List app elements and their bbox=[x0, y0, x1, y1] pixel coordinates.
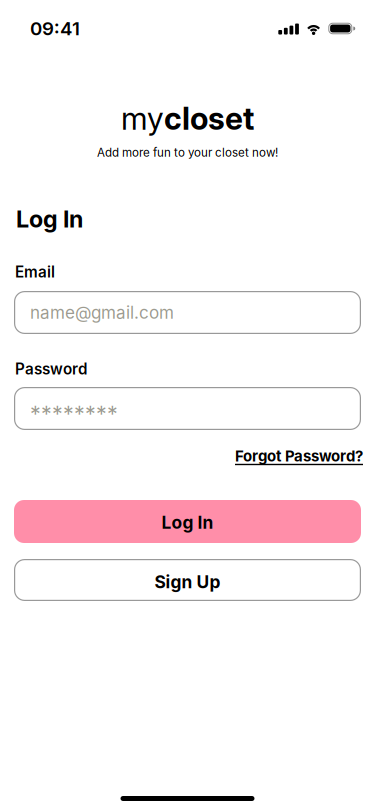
staticText: name@gmail.com bbox=[30, 302, 174, 323]
staticText: 09:41 bbox=[30, 17, 80, 40]
button[interactable]: Log In bbox=[14, 500, 361, 543]
staticText: Add more fun to your closet now! bbox=[97, 145, 278, 159]
button[interactable]: Forgot Password? bbox=[235, 447, 363, 465]
secureTextField[interactable]: ******** bbox=[30, 401, 361, 427]
staticText: Forgot Password? bbox=[235, 447, 363, 465]
staticText: Sign Up bbox=[154, 571, 220, 592]
staticText: ******** bbox=[30, 401, 118, 427]
staticText: mycloset bbox=[121, 100, 254, 137]
staticText: Log In bbox=[161, 512, 213, 533]
staticText: Email bbox=[15, 263, 55, 281]
textField[interactable]: name@gmail.com bbox=[30, 302, 361, 323]
staticText: Password bbox=[15, 360, 87, 378]
button[interactable]: Sign Up bbox=[14, 559, 361, 601]
staticText: Log In bbox=[16, 205, 83, 233]
